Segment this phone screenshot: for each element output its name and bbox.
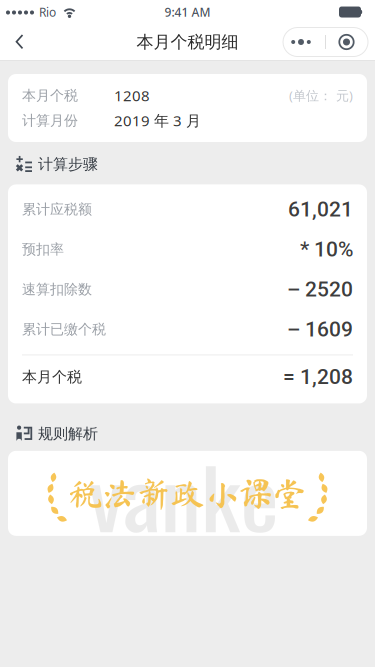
button[interactable]: Close xyxy=(325,27,368,56)
staticText: 税法新政小课堂 xyxy=(68,476,306,510)
staticText: 2019 年 3 月 xyxy=(114,110,201,130)
staticText: Rio xyxy=(39,4,56,20)
staticText: 计算月份 xyxy=(22,112,78,129)
staticText: 计算步骤 xyxy=(38,155,98,173)
staticText: = 1,208 xyxy=(283,365,353,389)
staticText: – 2520 xyxy=(287,277,353,302)
staticText: 61,021 xyxy=(288,197,353,222)
button[interactable]: Back xyxy=(0,24,40,60)
staticText: (单位： 元) xyxy=(289,87,353,104)
staticText: 累计应税额 xyxy=(22,201,92,218)
staticText: 9:41 AM xyxy=(164,4,210,20)
staticText: 累计已缴个税 xyxy=(22,321,106,338)
staticText: 速算扣除数 xyxy=(22,281,92,298)
button[interactable]: More xyxy=(283,27,325,56)
staticText: 1208 xyxy=(114,85,150,105)
staticText: 预扣率 xyxy=(22,241,64,258)
staticText: 本月个税 xyxy=(22,87,78,104)
staticText: 本月个税明细 xyxy=(136,32,238,52)
staticText: * 10% xyxy=(300,237,353,262)
staticText: – 1609 xyxy=(287,317,353,342)
staticText: vanke xyxy=(84,424,282,566)
staticText: 规则解析 xyxy=(38,424,98,443)
staticText: 本月个税 xyxy=(22,368,82,386)
